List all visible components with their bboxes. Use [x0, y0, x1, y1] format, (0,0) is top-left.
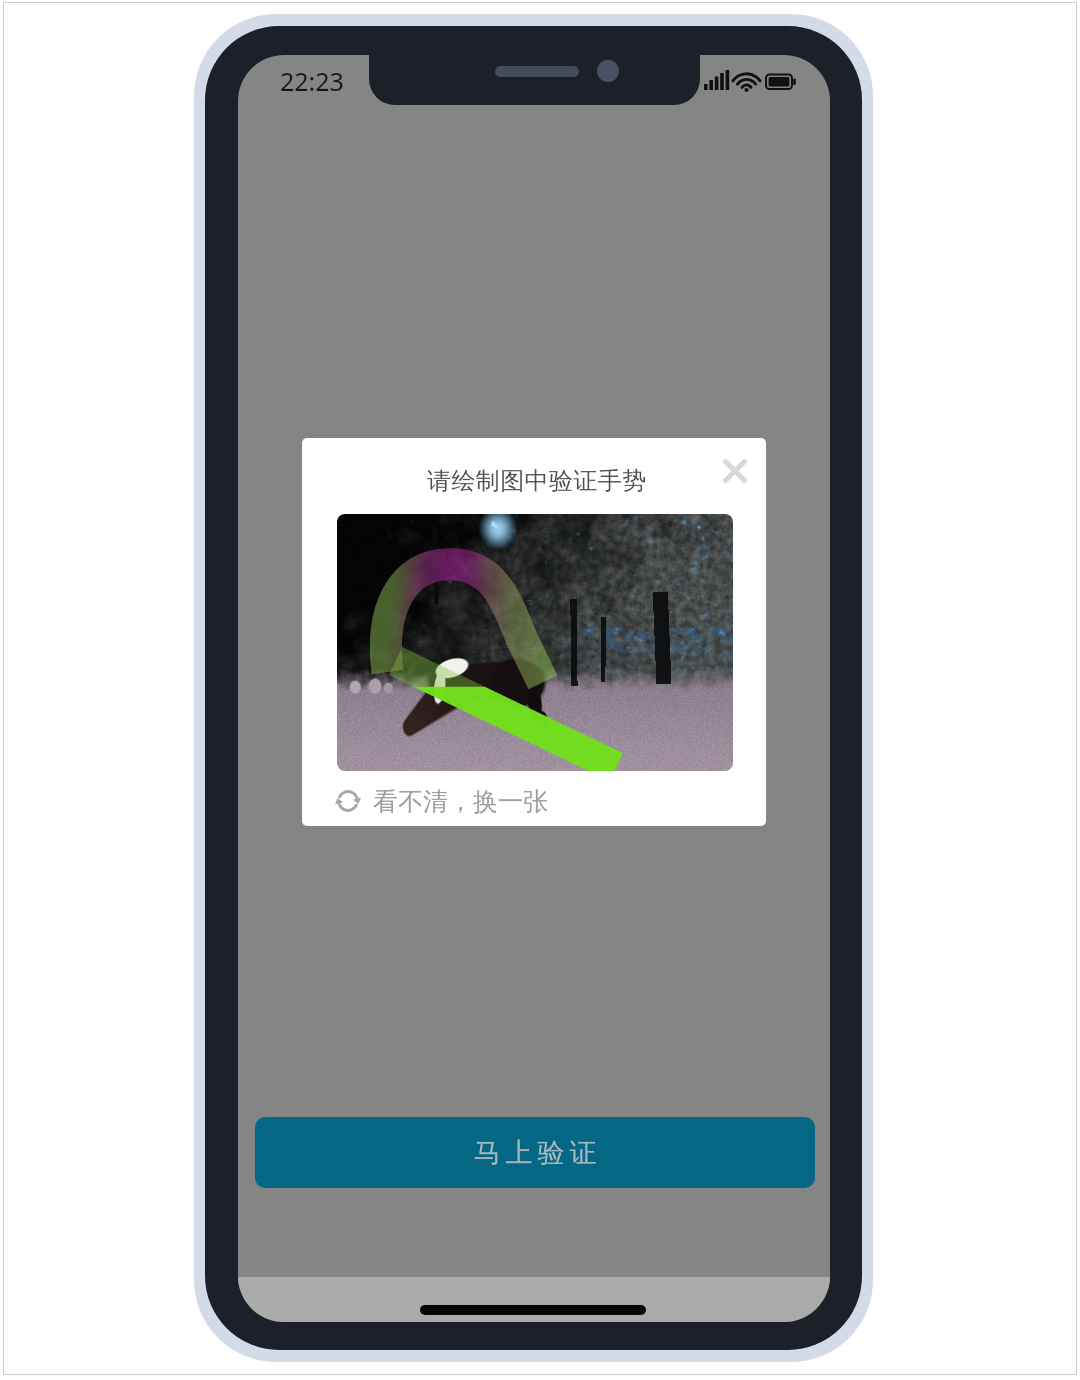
button[interactable]: Close: [711, 447, 759, 495]
button[interactable]: 马上验证: [255, 1117, 815, 1188]
staticText: 看不清，换一张: [373, 786, 548, 817]
staticText: 22:23: [280, 64, 344, 98]
staticText: 请绘制图中验证手势: [427, 466, 647, 496]
staticText: 马上验证: [471, 1136, 599, 1170]
button[interactable]: 看不清，换一张: [335, 783, 548, 819]
